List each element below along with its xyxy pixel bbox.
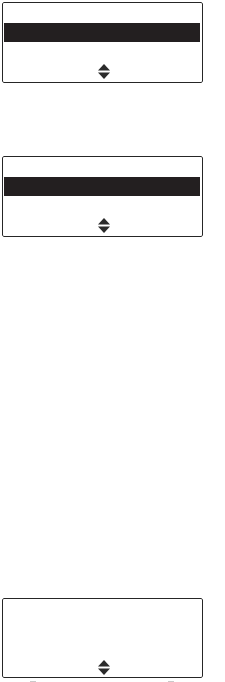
button[interactable]: Item three <box>2 598 203 678</box>
button[interactable]: Item two <box>2 156 203 237</box>
button[interactable]: Expand card <box>98 64 110 79</box>
button[interactable]: Item one <box>2 2 203 83</box>
button[interactable]: Expand card <box>98 660 110 675</box>
button[interactable]: Expand card <box>98 218 110 233</box>
